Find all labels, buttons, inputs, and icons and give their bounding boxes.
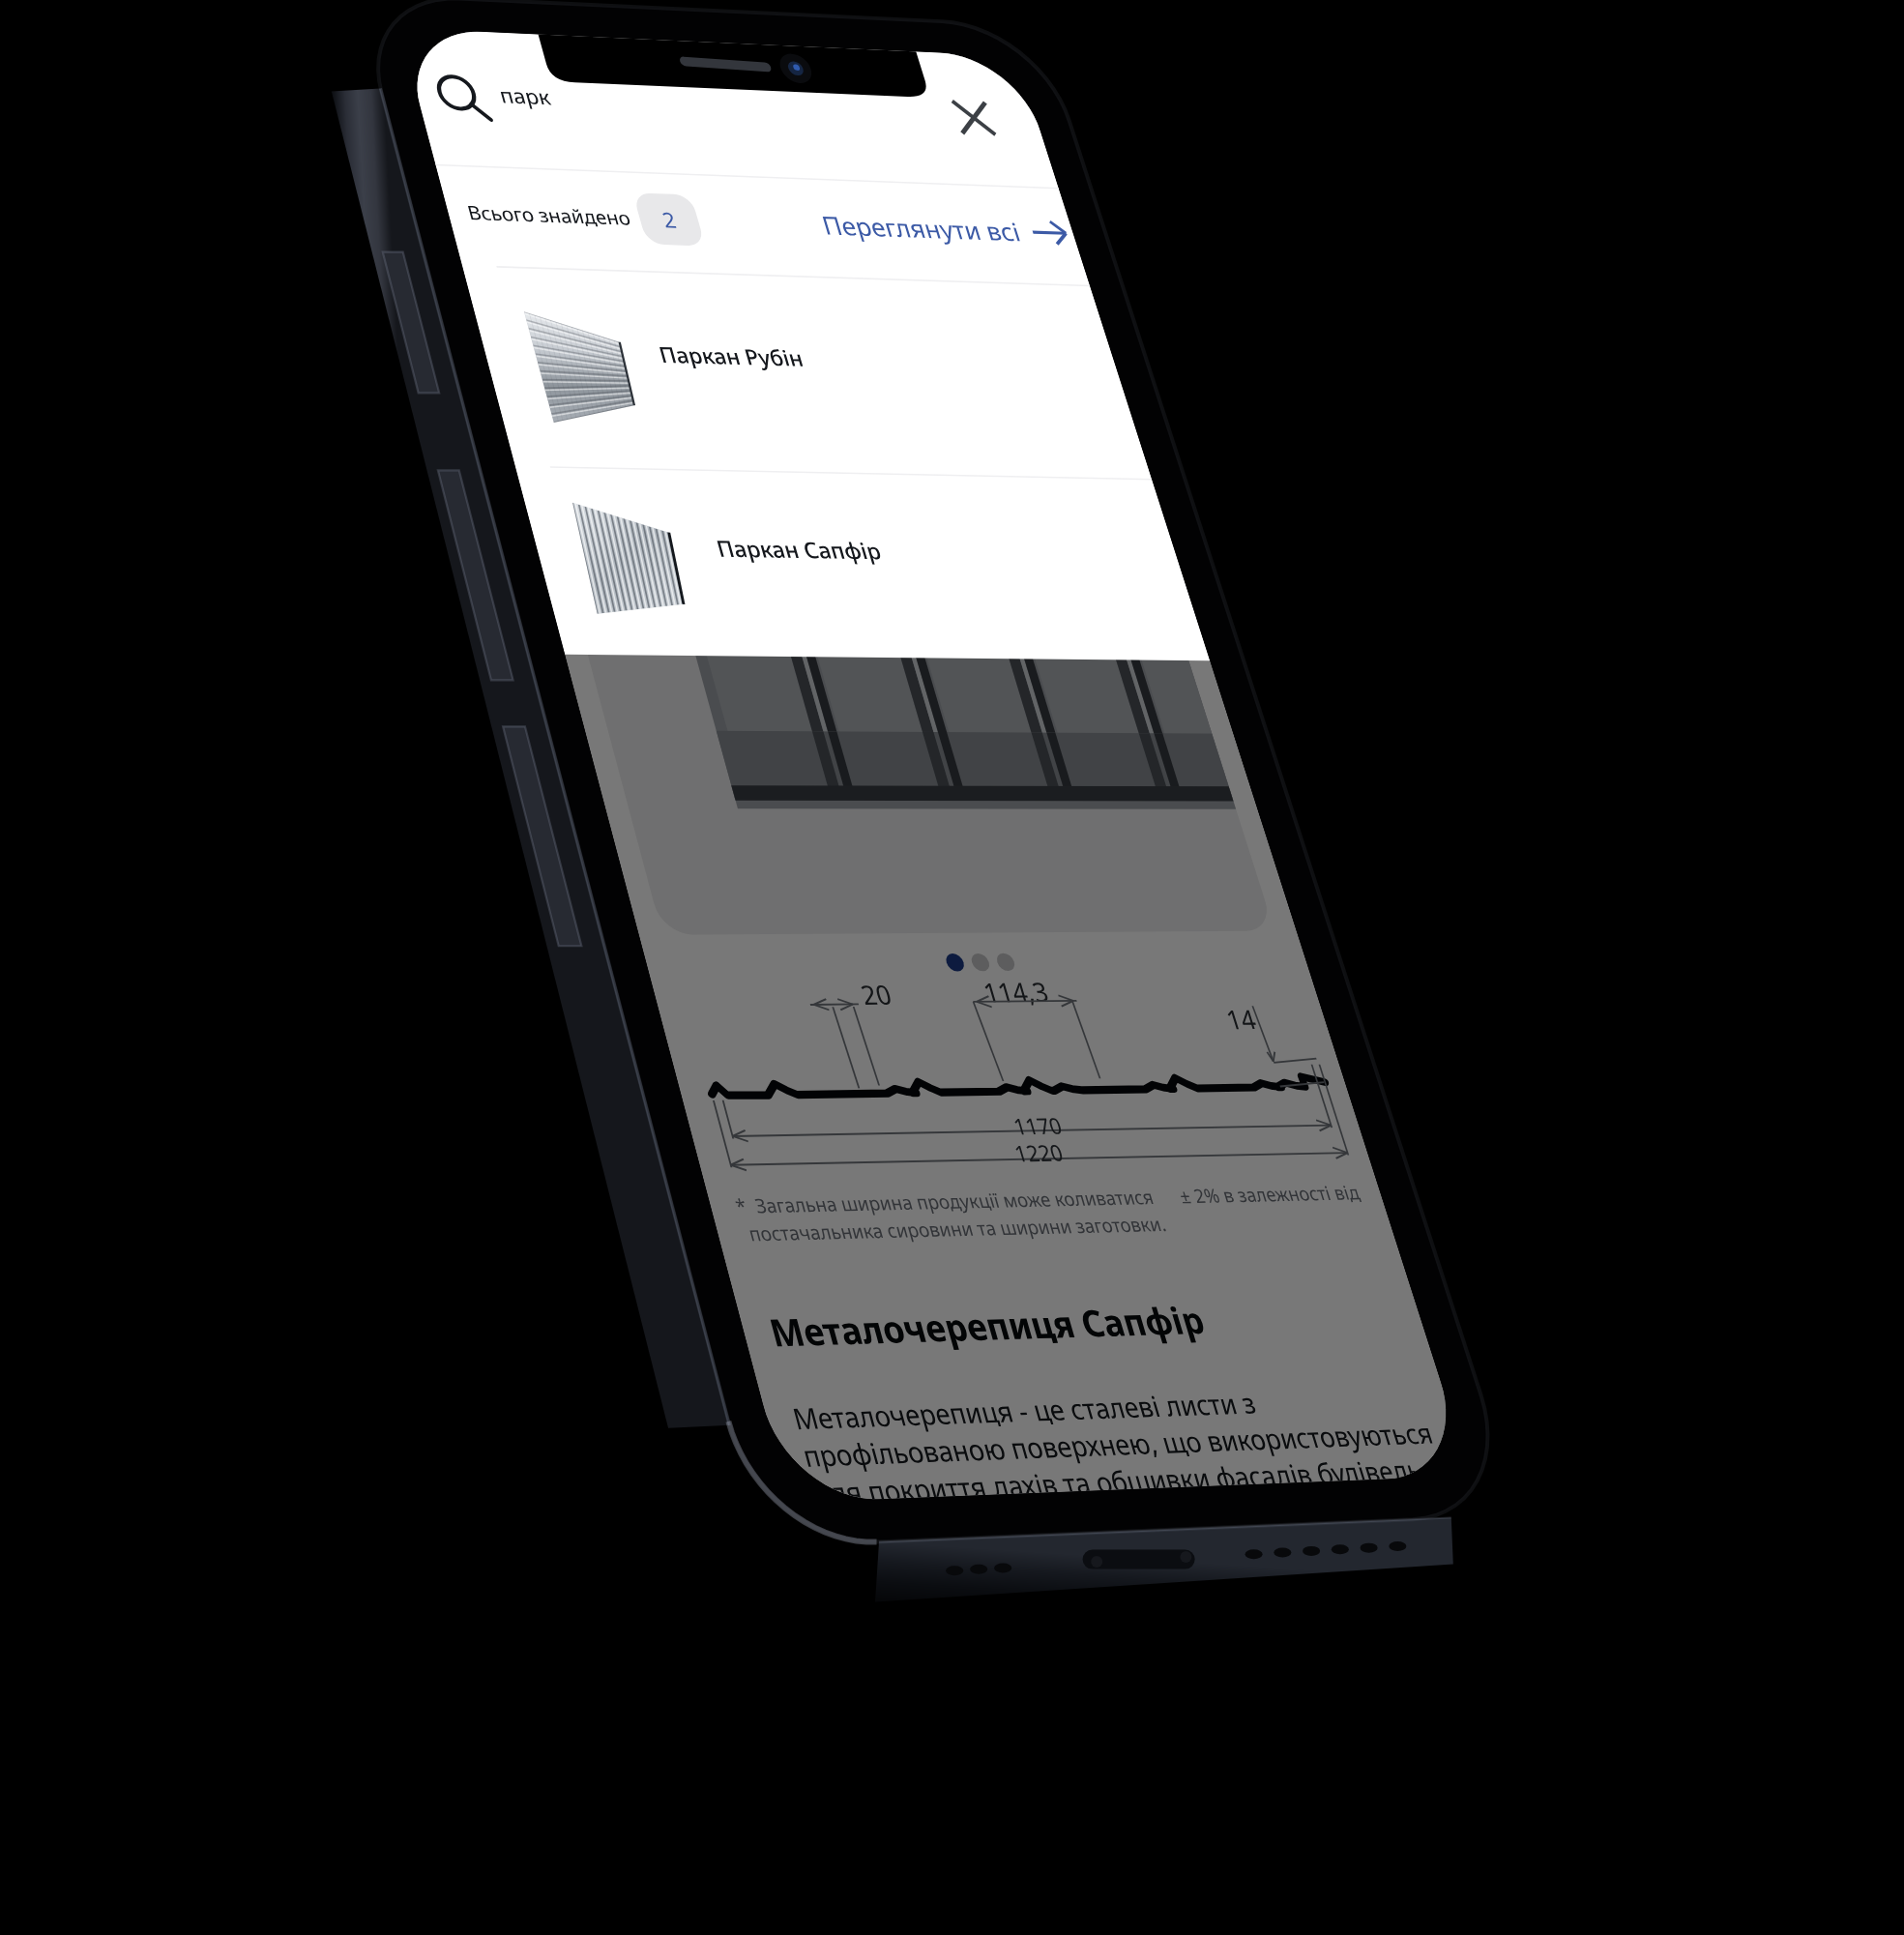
button[interactable]: Паркан Рубін <box>462 267 1151 478</box>
button[interactable]: Переглянути всі <box>776 191 1084 269</box>
button[interactable]: Search field: парк <box>399 28 971 185</box>
button[interactable]: Phone showing search results <box>0 0 1904 1935</box>
button[interactable]: Clear search <box>928 81 1022 155</box>
button[interactable]: Паркан Сапфір <box>515 467 1210 661</box>
